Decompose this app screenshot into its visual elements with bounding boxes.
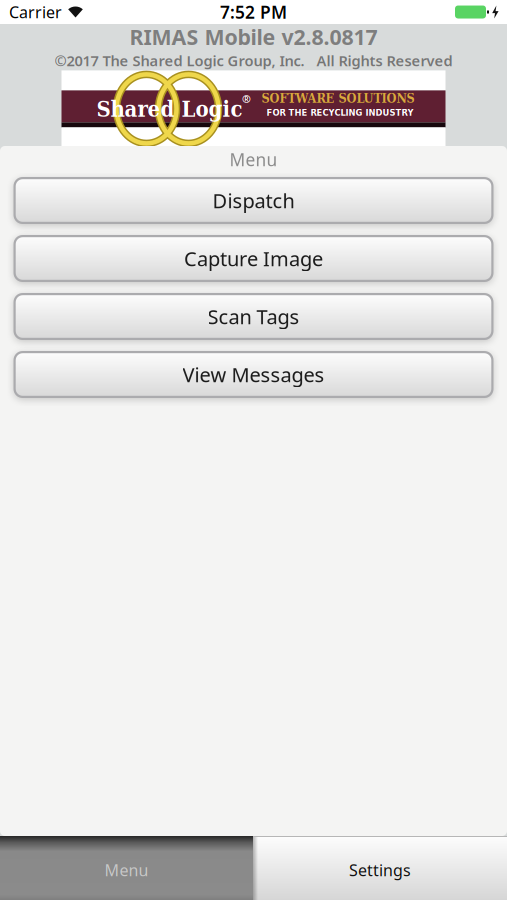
button[interactable]: Scan Tags xyxy=(13,293,493,340)
staticText: 7:52 PM xyxy=(220,0,287,23)
button[interactable]: Dispatch xyxy=(13,177,493,224)
staticText: Menu xyxy=(229,148,277,171)
staticText: ® xyxy=(242,92,251,106)
staticText: Settings xyxy=(349,859,411,881)
staticText: Carrier xyxy=(9,1,62,23)
button[interactable]: Capture Image xyxy=(13,235,493,282)
staticText: Capture Image xyxy=(184,245,323,272)
button[interactable]: Menu xyxy=(0,836,253,900)
staticText: View Messages xyxy=(182,361,324,388)
staticText: RIMAS Mobile v2.8.0817 xyxy=(129,23,377,51)
staticText: ©2017 The Shared Logic Group, Inc. All R… xyxy=(54,51,452,70)
button[interactable]: View Messages xyxy=(13,351,493,398)
staticText: Scan Tags xyxy=(207,303,299,330)
staticText: Dispatch xyxy=(212,187,294,214)
button[interactable]: Settings xyxy=(253,836,507,900)
staticText: SOFTWARE SOLUTIONS xyxy=(261,91,414,106)
staticText: FOR THE RECYCLING INDUSTRY xyxy=(266,107,413,118)
staticText: Shared Logic xyxy=(96,96,242,122)
staticText: Menu xyxy=(104,859,148,881)
